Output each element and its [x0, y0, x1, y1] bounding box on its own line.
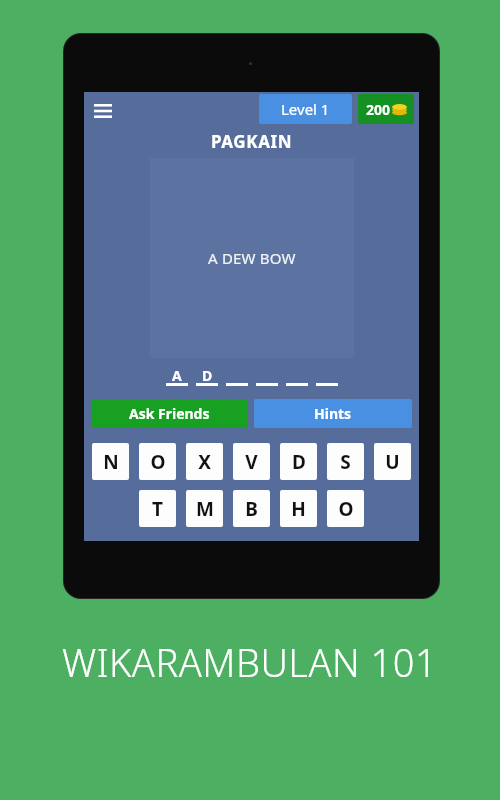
- staticText: X: [198, 449, 211, 475]
- staticText: Ask Friends: [129, 404, 210, 423]
- button[interactable]: O: [327, 490, 364, 527]
- button[interactable]: [286, 366, 308, 386]
- button[interactable]: A: [166, 366, 188, 386]
- staticText: 200: [366, 100, 391, 119]
- button[interactable]: U: [374, 443, 411, 480]
- button[interactable]: M: [186, 490, 223, 527]
- button[interactable]: [316, 366, 338, 386]
- staticText: M: [196, 496, 214, 522]
- button[interactable]: V: [233, 443, 270, 480]
- button[interactable]: O: [139, 443, 176, 480]
- button[interactable]: D: [280, 443, 317, 480]
- staticText: N: [103, 449, 119, 475]
- button[interactable]: H: [280, 490, 317, 527]
- staticText: T: [152, 496, 163, 522]
- staticText: Level 1: [281, 99, 330, 119]
- staticText: O: [338, 496, 354, 522]
- button[interactable]: T: [139, 490, 176, 527]
- staticText: O: [150, 449, 166, 475]
- staticText: A: [172, 366, 182, 383]
- staticText: Hints: [314, 404, 352, 423]
- button[interactable]: D: [196, 366, 218, 386]
- button[interactable]: Menu: [90, 98, 116, 124]
- button[interactable]: [226, 366, 248, 386]
- button[interactable]: N: [92, 443, 129, 480]
- button[interactable]: Level 1: [259, 94, 352, 124]
- button[interactable]: [256, 366, 278, 386]
- staticText: U: [385, 449, 400, 475]
- staticText: D: [292, 449, 306, 475]
- staticText: H: [291, 496, 306, 522]
- button[interactable]: Hints: [254, 399, 412, 428]
- button[interactable]: X: [186, 443, 223, 480]
- staticText: S: [340, 449, 351, 475]
- staticText: B: [245, 496, 258, 522]
- staticText: WIKARAMBULAN 101: [62, 636, 438, 688]
- staticText: V: [245, 449, 258, 475]
- staticText: A DEW BOW: [208, 248, 296, 268]
- staticText: D: [202, 366, 213, 383]
- button[interactable]: B: [233, 490, 270, 527]
- button[interactable]: S: [327, 443, 364, 480]
- staticText: PAGKAIN: [211, 130, 293, 153]
- button[interactable]: Ask Friends: [91, 399, 248, 428]
- button[interactable]: 200: [358, 94, 414, 124]
